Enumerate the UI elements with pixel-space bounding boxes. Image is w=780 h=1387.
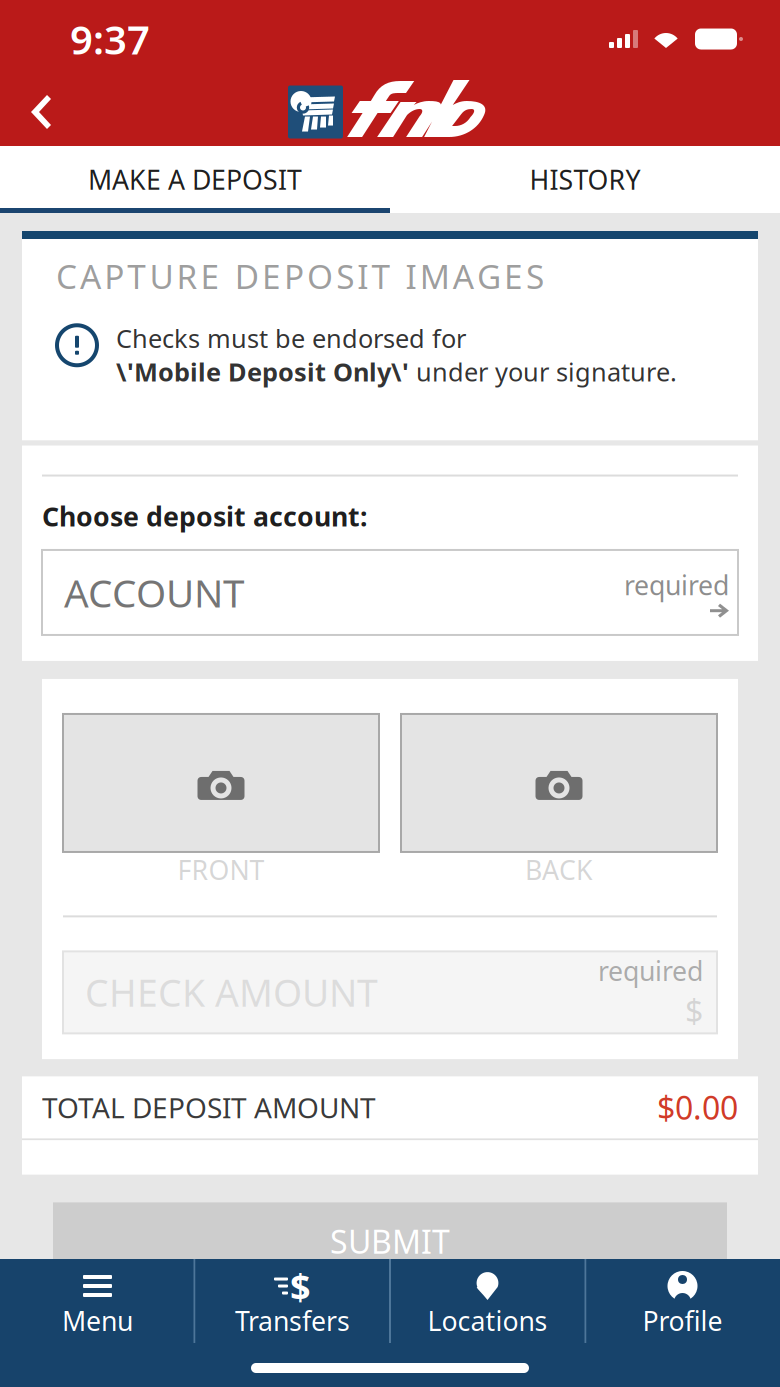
staticText: \'Mobile Deposit Only\' under your signa… (116, 355, 677, 388)
staticText: $ (290, 1262, 311, 1310)
staticText: required (624, 567, 729, 603)
staticText: Checks must be endorsed for (116, 321, 466, 355)
staticText: FRONT (177, 852, 264, 887)
button[interactable]: ACCOUNT (42, 550, 738, 635)
staticText: Choose deposit account: (42, 498, 367, 534)
button[interactable]: HISTORY (390, 146, 780, 213)
staticText: TOTAL DEPOSIT AMOUNT (42, 1089, 376, 1126)
staticText: $ (685, 989, 703, 1032)
staticText: Profile (642, 1303, 722, 1338)
staticText: MAKE A DEPOSIT (88, 162, 302, 197)
button[interactable]: MAKE A DEPOSIT (0, 146, 390, 213)
staticText: Transfers (235, 1303, 350, 1338)
staticText: 9:37 (70, 12, 150, 65)
staticText: BACK (525, 852, 593, 887)
button[interactable]: SUBMIT (53, 1202, 727, 1280)
staticText: Menu (62, 1303, 133, 1338)
button[interactable]: $ (195, 1259, 390, 1351)
staticText: ACCOUNT (64, 567, 244, 618)
staticText: CAPTURE DEPOSIT IMAGES (56, 254, 544, 298)
staticText: required (598, 953, 703, 988)
button[interactable]: FRONT (63, 714, 379, 887)
staticText: Locations (427, 1303, 547, 1338)
button[interactable]: Menu (0, 1259, 195, 1351)
button[interactable]: BACK (401, 714, 717, 887)
button[interactable]: Locations (390, 1259, 585, 1351)
staticText: SUBMIT (330, 1220, 450, 1263)
staticText: HISTORY (529, 162, 640, 197)
staticText: $0.00 (657, 1086, 738, 1129)
staticText: CHECK AMOUNT (85, 968, 378, 1017)
button[interactable]: Back (0, 79, 78, 145)
button[interactable]: Profile (585, 1259, 780, 1351)
